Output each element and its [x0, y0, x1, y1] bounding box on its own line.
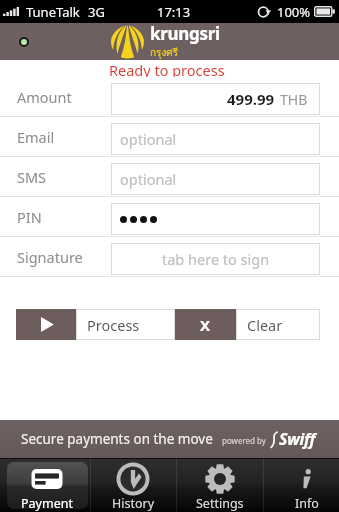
staticText: tab here to sign [162, 249, 270, 269]
staticText: Payment [21, 495, 73, 512]
staticText: Clear [247, 315, 283, 335]
staticText: Email [17, 127, 55, 147]
staticText: 3G [88, 3, 105, 21]
staticText: optional [120, 169, 177, 189]
staticText: PIN [17, 207, 42, 227]
staticText: Amount [17, 87, 72, 107]
staticText: กรุงศรี [150, 45, 179, 59]
button[interactable]: Process [16, 309, 175, 340]
button[interactable]: Info [263, 458, 339, 512]
staticText: Info [295, 495, 319, 512]
staticText: krungsri [150, 22, 220, 45]
staticText: History [112, 495, 155, 512]
staticText: THB [280, 90, 308, 109]
button[interactable]: PIN [0, 197, 339, 237]
button[interactable]: X [175, 309, 320, 340]
staticText: 100% [277, 3, 311, 21]
button[interactable]: Amount [0, 77, 339, 117]
button[interactable]: Payment [4, 458, 90, 512]
staticText: TuneTalk [26, 3, 80, 21]
button[interactable]: Settings [176, 458, 263, 512]
staticText: 17:13 [157, 3, 191, 21]
staticText: powered by [222, 435, 266, 446]
staticText: SMS [17, 167, 47, 187]
staticText: X [200, 315, 211, 335]
staticText: Swiff [279, 428, 316, 450]
button[interactable]: SMS [0, 157, 339, 197]
staticText: Ready to process [109, 60, 225, 77]
staticText: optional [120, 129, 177, 149]
button[interactable]: History [90, 458, 176, 512]
staticText: Secure payments on the move [21, 430, 213, 448]
button[interactable]: Signature [0, 237, 339, 277]
staticText: Process [87, 315, 140, 335]
staticText: Signature [17, 247, 83, 267]
button[interactable]: Email [0, 117, 339, 157]
staticText: 499.99 [227, 89, 275, 109]
staticText: Settings [196, 495, 244, 512]
